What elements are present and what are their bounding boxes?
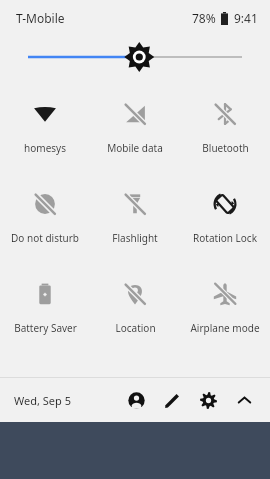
button[interactable]: Mobile data [90,88,180,178]
staticText: Wed, Sep 5 [14,393,71,408]
button[interactable]: Collapse [232,388,256,412]
button[interactable]: homesys [0,88,90,178]
staticText: Location [115,321,156,335]
button[interactable]: Bluetooth [180,88,270,178]
button[interactable]: Account [124,388,148,412]
button[interactable]: Do not disturb [0,178,90,268]
button[interactable]: Location [90,268,180,358]
button[interactable]: Flashlight [90,178,180,268]
staticText: Airplane mode [190,321,260,335]
staticText: T-Mobile [16,10,65,26]
staticText: homesys [24,141,66,155]
button[interactable]: Edit [160,388,184,412]
staticText: Rotation Lock [193,231,257,245]
button[interactable]: Rotation Lock [180,178,270,268]
button[interactable]: Brightness [0,36,270,78]
staticText: 78% [192,10,216,26]
button[interactable]: Airplane mode [180,268,270,358]
button[interactable]: Battery Saver [0,268,90,358]
staticText: Bluetooth [202,141,249,155]
staticText: Battery Saver [14,321,77,335]
staticText: 9:41 [234,10,258,26]
staticText: Mobile data [107,141,163,155]
staticText: Flashlight [112,231,158,245]
button[interactable]: Settings [196,388,220,412]
staticText: Do not disturb [11,231,79,245]
